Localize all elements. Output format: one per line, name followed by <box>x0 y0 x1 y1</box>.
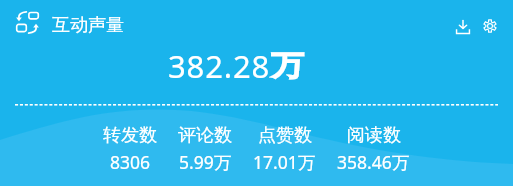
staticText: 358.46万 <box>337 150 410 174</box>
button[interactable]: Settings <box>477 13 503 39</box>
staticText: 点赞数 <box>258 124 312 147</box>
staticText: 5.99万 <box>179 150 232 174</box>
staticText: 382.28 <box>168 45 271 87</box>
staticText: 万 <box>271 48 304 84</box>
staticText: 评论数 <box>178 124 232 147</box>
staticText: 17.01万 <box>253 150 316 174</box>
staticText: 互动声量 <box>52 14 124 37</box>
staticText: 阅读数 <box>347 124 401 147</box>
staticText: 转发数 <box>103 124 157 147</box>
button[interactable]: Download <box>450 14 476 40</box>
staticText: 8306 <box>110 150 151 174</box>
